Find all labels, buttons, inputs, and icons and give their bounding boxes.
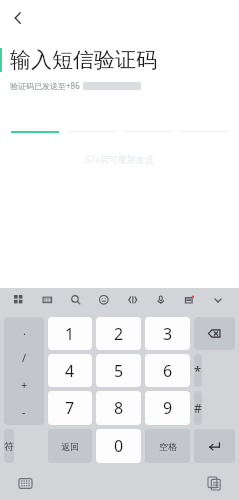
button[interactable]: 返回 (48, 429, 92, 463)
staticText: 1 (65, 323, 75, 345)
button[interactable]: Keyboard (37, 289, 61, 313)
staticText: 8 (114, 397, 124, 419)
staticText: # (194, 400, 202, 416)
button[interactable]: * (194, 354, 202, 387)
button[interactable]: Back (4, 4, 32, 32)
button[interactable]: Delete (194, 317, 235, 350)
button[interactable]: # (194, 391, 202, 425)
button[interactable]: 符 (4, 429, 14, 463)
staticText: 符 (4, 440, 14, 453)
staticText: 57s后可重新发送 (0, 153, 239, 165)
button[interactable]: 2 (96, 317, 141, 350)
button[interactable]: 0 (96, 429, 141, 463)
staticText: - (22, 404, 26, 419)
staticText: 4 (65, 360, 75, 382)
staticText: 2 (114, 323, 124, 345)
button[interactable]: 8 (96, 391, 141, 425)
staticText: . (23, 323, 26, 338)
staticText: 3 (163, 323, 173, 345)
staticText: 空格 (159, 441, 177, 452)
button[interactable]: Switch keyboard (14, 472, 36, 494)
button[interactable]: 9 (145, 391, 190, 425)
staticText: 验证码已发送至+86 (10, 80, 80, 91)
button[interactable]: 3 (145, 317, 190, 350)
button[interactable]: 6 (145, 354, 190, 387)
button[interactable]: 1 (48, 317, 92, 350)
button[interactable]: Apps (8, 289, 32, 313)
button[interactable]: Clipboard history (178, 289, 202, 313)
staticText: * (194, 362, 202, 380)
staticText: 9 (163, 397, 173, 419)
button[interactable]: . (4, 317, 44, 425)
button[interactable]: Clipboard (203, 472, 225, 494)
staticText: 7 (65, 397, 75, 419)
button[interactable]: 空格 (145, 429, 190, 463)
button[interactable]: 4 (48, 354, 92, 387)
staticText: 6 (163, 360, 173, 382)
staticText: 5 (114, 360, 124, 382)
staticText: 返回 (61, 441, 79, 452)
button[interactable]: 5 (96, 354, 141, 387)
staticText: + (21, 377, 28, 392)
staticText: 输入短信验证码 (10, 47, 157, 73)
button[interactable]: Translate (122, 289, 146, 313)
button[interactable]: Voice input (150, 289, 174, 313)
button[interactable]: 7 (48, 391, 92, 425)
button[interactable]: Emoji (93, 289, 117, 313)
staticText: 0 (114, 435, 124, 457)
staticText: / (22, 350, 27, 365)
button[interactable]: Enter (194, 429, 235, 463)
button[interactable]: Search (65, 289, 89, 313)
button[interactable]: Hide keyboard (207, 289, 231, 313)
